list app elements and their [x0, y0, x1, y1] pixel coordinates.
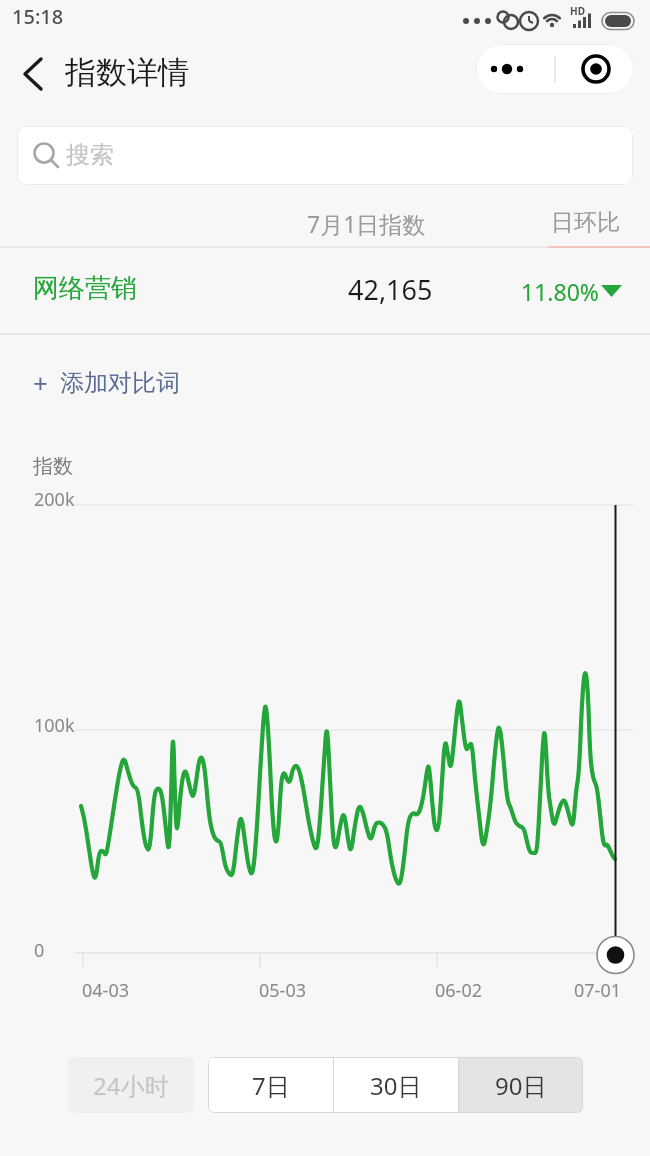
button[interactable]: 24小时 — [68, 1057, 194, 1113]
staticText: 日环比 — [551, 208, 620, 237]
staticText: + — [33, 365, 48, 400]
button[interactable] — [10, 50, 58, 98]
staticText: 7日 — [252, 1069, 290, 1102]
staticText: 06-02 — [435, 978, 482, 1003]
staticText: 11.80% — [521, 276, 599, 307]
staticText: 指数详情 — [65, 53, 189, 92]
button[interactable] — [555, 44, 634, 94]
staticText: 42,165 — [348, 271, 433, 308]
button[interactable]: 网络营销 — [0, 247, 650, 333]
button[interactable]: + — [20, 355, 220, 411]
staticText: 添加对比词 — [60, 368, 180, 398]
staticText: 100k — [34, 713, 75, 738]
button[interactable]: 30日 — [334, 1057, 458, 1113]
staticText: 200k — [34, 487, 75, 512]
staticText: 0 — [34, 938, 45, 963]
staticText: 24小时 — [93, 1069, 169, 1102]
button[interactable]: 搜索 — [17, 126, 633, 185]
staticText: 7月1日指数 — [307, 208, 426, 239]
staticText: 04-03 — [82, 978, 129, 1003]
button[interactable]: 90日 — [459, 1057, 583, 1113]
staticText: 30日 — [370, 1069, 422, 1102]
staticText: 搜索 — [66, 140, 114, 170]
staticText: 网络营销 — [33, 272, 137, 305]
staticText: 05-03 — [259, 978, 306, 1003]
button[interactable] — [476, 44, 555, 94]
staticText: 15:18 — [12, 3, 64, 30]
button[interactable]: 7日 — [208, 1057, 333, 1113]
staticText: 指数 — [33, 454, 73, 479]
staticText: 90日 — [495, 1069, 547, 1102]
staticText: 07-01 — [574, 978, 621, 1003]
staticText: HD — [570, 4, 585, 18]
